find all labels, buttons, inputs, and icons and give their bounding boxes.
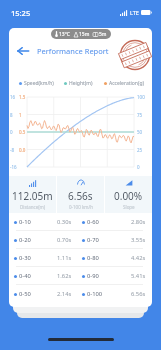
- staticText: 0-50: [19, 290, 31, 298]
- staticText: Height(m): [69, 80, 93, 87]
- staticText: Slope: [123, 204, 135, 210]
- staticText: -8: [10, 147, 15, 153]
- staticText: 0-70: [87, 236, 99, 244]
- staticText: 25: [137, 147, 143, 153]
- button[interactable]: 0-70: [82, 236, 146, 244]
- staticText: 6.56s: [68, 189, 93, 203]
- staticText: 2.14s: [57, 290, 72, 298]
- staticText: 0.30s: [57, 218, 72, 226]
- staticText: 0-20: [19, 236, 31, 244]
- staticText: Performance Report: [37, 46, 109, 56]
- button[interactable]: 112.05m: [9, 176, 56, 213]
- staticText: LTE: [130, 9, 139, 16]
- staticText: 8: [10, 112, 13, 118]
- staticText: 5.41s: [131, 272, 146, 280]
- button[interactable]: 0-60: [82, 218, 146, 226]
- button[interactable]: 0-100: [82, 290, 146, 298]
- staticText: Speed(km/h): [24, 80, 54, 87]
- staticText: 6.56s: [131, 290, 146, 298]
- staticText: 0: [10, 129, 13, 135]
- staticText: 15m: [79, 31, 90, 38]
- staticText: 50: [137, 129, 143, 135]
- staticText: 0-80: [87, 254, 99, 262]
- button[interactable]: Back: [15, 43, 31, 59]
- button[interactable]: 0-40: [14, 272, 72, 280]
- staticText: 0-100: [87, 290, 103, 298]
- button[interactable]: 0-10: [14, 218, 72, 226]
- staticText: 2.80s: [131, 218, 146, 226]
- staticText: Acceleration(g): [109, 80, 144, 87]
- staticText: 0.0: [19, 147, 26, 153]
- staticText: 1: [19, 112, 22, 118]
- staticText: 0: [137, 164, 140, 170]
- staticText: 13°C: [59, 31, 71, 38]
- staticText: 0.5: [19, 129, 26, 135]
- staticText: 0.70s: [57, 236, 72, 244]
- button[interactable]: 6.56s: [57, 176, 104, 213]
- staticText: 75: [137, 112, 143, 118]
- staticText: 0.00%: [114, 189, 143, 203]
- staticText: Distance(m): [20, 204, 46, 210]
- staticText: 5m: [99, 31, 107, 38]
- staticText: 0-60: [87, 218, 99, 226]
- button[interactable]: 0-90: [82, 272, 146, 280]
- button[interactable]: 0.00%: [105, 176, 152, 213]
- staticText: 15:25: [11, 8, 31, 18]
- button[interactable]: 0-50: [14, 290, 72, 298]
- staticText: 1.62s: [57, 272, 72, 280]
- staticText: 0-30: [19, 254, 31, 262]
- staticText: 1.11s: [57, 254, 72, 262]
- staticText: 16: [10, 94, 16, 100]
- staticText: 0-10: [19, 218, 31, 226]
- staticText: 0-40: [19, 272, 31, 280]
- staticText: 0-90: [87, 272, 99, 280]
- button[interactable]: 0-30: [14, 254, 72, 262]
- button[interactable]: 0-20: [14, 236, 72, 244]
- staticText: 112.05m: [12, 189, 53, 203]
- button[interactable]: 13°C: [51, 29, 111, 39]
- staticText: 0-100 km/h: [69, 204, 93, 210]
- staticText: 4.42s: [131, 254, 146, 262]
- staticText: 3.55s: [131, 236, 146, 244]
- staticText: 100: [137, 94, 145, 100]
- staticText: 1.5: [19, 94, 26, 100]
- button[interactable]: 0-80: [82, 254, 146, 262]
- staticText: -16: [10, 164, 17, 170]
